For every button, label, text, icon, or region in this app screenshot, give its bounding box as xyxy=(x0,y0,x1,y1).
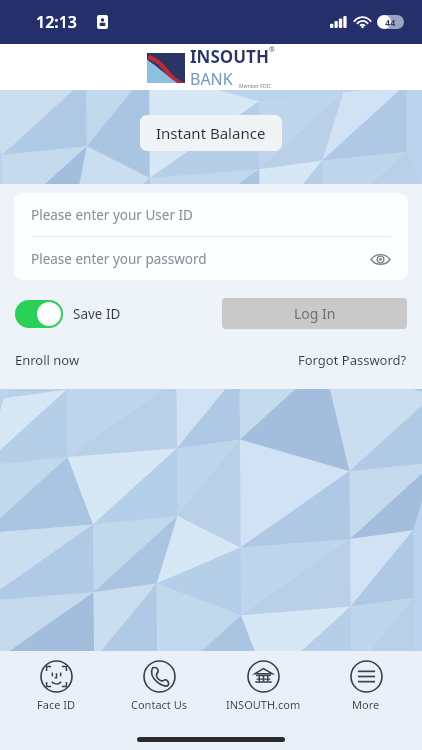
staticText: INSOUTH xyxy=(190,45,269,68)
button[interactable]: Show password xyxy=(366,245,394,273)
button[interactable]: INSOUTH.com xyxy=(215,660,311,712)
staticText: Please enter your User ID xyxy=(31,206,193,224)
staticText: Member FDIC xyxy=(239,83,272,90)
button[interactable]: Face ID xyxy=(8,660,104,712)
staticText: Save ID xyxy=(73,305,121,323)
button[interactable]: Please enter your password xyxy=(14,237,408,280)
staticText: ® xyxy=(269,45,275,55)
staticText: Log In xyxy=(294,304,336,323)
staticText: More xyxy=(352,697,380,712)
staticText: 12:13 xyxy=(36,11,78,33)
staticText: Face ID xyxy=(37,697,75,712)
button[interactable]: Instant Balance xyxy=(140,115,282,151)
staticText: Contact Us xyxy=(131,697,187,712)
button[interactable]: More xyxy=(318,660,414,712)
staticText: Please enter your password xyxy=(31,250,207,268)
staticText: BANK xyxy=(190,68,233,90)
staticText: Forgot Password? xyxy=(298,351,407,369)
staticText: Enroll now xyxy=(15,351,80,369)
button[interactable]: Log In xyxy=(222,298,407,329)
staticText: INSOUTH.com xyxy=(226,697,301,712)
button[interactable]: Forgot Password? xyxy=(298,351,407,369)
staticText: 44 xyxy=(385,16,396,28)
button[interactable]: Enroll now xyxy=(15,351,80,369)
button[interactable]: Save ID xyxy=(15,300,121,328)
button[interactable]: Contact Us xyxy=(111,660,207,712)
staticText: Instant Balance xyxy=(156,123,266,143)
button[interactable]: Please enter your User ID xyxy=(14,193,408,236)
